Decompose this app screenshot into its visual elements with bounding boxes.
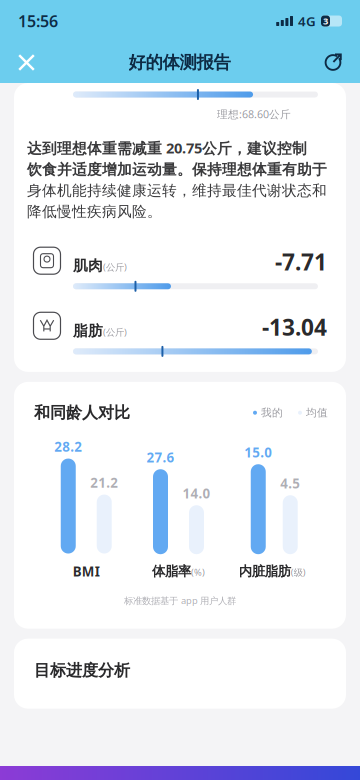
staticText: (公斤): [103, 261, 127, 273]
staticText: 达到理想体重需减重 20.75公斤，建议控制: [27, 138, 307, 158]
staticText: 4G: [298, 12, 316, 30]
staticText: 降低慢性疾病风险。: [27, 203, 162, 221]
staticText: (公斤): [103, 326, 127, 338]
staticText: -7.71: [275, 247, 327, 277]
staticText: (%): [191, 566, 205, 578]
staticText: 身体机能持续健康运转，维持最佳代谢状态和: [27, 182, 327, 200]
staticText: 和同龄人对比: [34, 403, 130, 423]
staticText: 好的体测报告: [128, 52, 230, 73]
staticText: BMI: [73, 562, 100, 580]
staticText: 15:56: [18, 10, 58, 32]
staticText: 27.6: [146, 448, 174, 466]
staticText: 4.5: [280, 474, 300, 492]
staticText: -13.04: [262, 312, 327, 342]
staticText: 14.0: [182, 484, 210, 502]
button[interactable]: 刷新: [317, 46, 349, 79]
staticText: +20.75: [256, 55, 327, 85]
staticText: 28.2: [54, 438, 82, 455]
staticText: 理想:68.60公斤: [217, 107, 291, 121]
staticText: 饮食并适度增加运动量。保持理想体重有助于: [27, 161, 327, 179]
staticText: (级): [291, 566, 306, 578]
staticText: 体脂率: [152, 563, 191, 580]
staticText: 21.2: [90, 474, 118, 491]
staticText: 内脏脂肪: [239, 563, 291, 580]
staticText: 15.0: [244, 443, 272, 461]
staticText: 肌肉: [73, 257, 103, 275]
staticText: 3: [323, 15, 328, 27]
staticText: 均值: [306, 406, 328, 419]
staticText: 标准数据基于 app 用户人群: [124, 594, 236, 607]
staticText: 脂肪: [73, 322, 103, 340]
staticText: 目标进度分析: [34, 661, 130, 680]
button[interactable]: 关闭: [11, 47, 42, 78]
staticText: 我的: [261, 406, 283, 419]
